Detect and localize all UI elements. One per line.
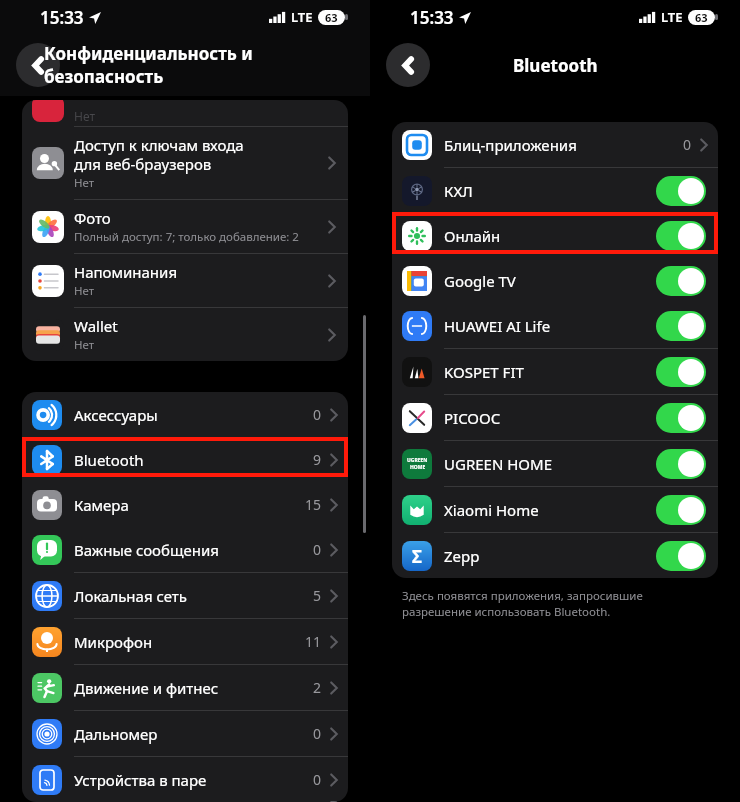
button[interactable]: Переключатель включён [656,449,706,479]
staticText: Микрофон [74,632,305,652]
staticText: HOME [410,464,426,471]
staticText: Нет [74,175,95,191]
staticText: Дальномер [74,724,313,744]
staticText: Важные сообщения [74,540,313,560]
staticText: 0 [313,405,322,424]
button[interactable]: UGREEN [392,441,718,486]
button[interactable]: Переключатель включён [656,403,706,433]
staticText: Аксессуары [74,405,313,425]
staticText: 5 [313,586,322,605]
staticText: LTE [291,8,313,26]
staticText: 15:33 [40,6,84,29]
button[interactable]: Аксессуары [22,392,348,437]
staticText: Доступ к ключам входа для веб-браузеров [74,135,244,174]
button[interactable]: Переключатель включён [656,266,706,296]
button[interactable]: Переключатель включён [656,541,706,571]
button[interactable]: Переключатель включён [656,221,706,251]
staticText: Xiaomi Home [444,500,656,520]
button[interactable]: Доступ к ключам входа для веб-браузеров [22,127,348,199]
button[interactable]: Google TV [392,258,718,303]
staticText: Здесь появятся приложения, запросившие р… [402,588,643,619]
button[interactable]: Напоминания [22,254,348,307]
button[interactable]: Переключатель включён [656,176,706,206]
staticText: Онлайн [444,226,656,246]
staticText: Нет [74,108,95,124]
button[interactable]: Переключатель включён [656,357,706,387]
staticText: 11 [305,632,322,651]
staticText: UGREEN HOME [444,454,656,474]
staticText: Движение и фитнес [74,678,313,698]
button[interactable]: Назад [386,43,430,87]
button[interactable]: Фото [22,200,348,253]
button[interactable]: Онлайн [392,213,718,258]
staticText: 0 [313,770,322,789]
button[interactable]: Устройства в паре [22,757,348,802]
staticText: Локальная сеть [74,586,313,606]
button[interactable]: Переключатель включён [656,495,706,525]
staticText: Bluetooth [74,450,313,470]
button[interactable]: Важные сообщения [22,527,348,572]
staticText: Устройства в паре [74,770,313,790]
staticText: 15 [305,495,322,514]
button[interactable]: Σ [392,533,718,578]
staticText: HUAWEI AI Life [444,316,656,336]
staticText: Нет [74,283,95,299]
staticText: 0 [313,540,322,559]
staticText: 9 [313,450,322,469]
staticText: LTE [661,8,683,26]
staticText: Zepp [444,546,656,566]
button[interactable]: Блиц-приложения [392,122,718,167]
staticText: Google TV [444,271,656,291]
staticText: 63 [695,10,708,25]
button[interactable]: Назад [16,43,60,87]
button[interactable]: КХЛ [392,168,718,213]
button[interactable]: Xiaomi Home [392,487,718,532]
staticText: 0 [683,135,692,154]
staticText: UGREEN [407,457,428,464]
button[interactable]: Микрофон [22,619,348,664]
button[interactable]: Локальная сеть [22,573,348,618]
staticText: KOSPET FIT [444,362,656,382]
staticText: 0 [313,724,322,743]
staticText: 63 [325,10,338,25]
button[interactable]: Bluetooth [22,437,348,482]
staticText: 15:33 [410,6,454,29]
staticText: Камера [74,495,305,515]
staticText: КХЛ [444,181,656,201]
staticText: Конфиденциальность и безопасность [44,42,364,88]
button[interactable]: Дальномер [22,711,348,756]
button[interactable]: Движение и фитнес [22,665,348,710]
staticText: 2 [313,678,322,697]
staticText: Полный доступ: 7; только добавление: 2 [74,229,299,245]
staticText: Wallet [74,316,118,336]
staticText: Фото [74,208,111,228]
button[interactable]: Wallet [22,308,348,361]
staticText: Нет [74,337,95,353]
staticText: Блиц-приложения [444,135,683,155]
staticText: PICOOC [444,408,656,428]
staticText: Напоминания [74,262,178,282]
button[interactable]: Переключатель включён [656,311,706,341]
button[interactable]: PICOOC [392,395,718,440]
staticText: Σ [412,545,422,568]
button[interactable]: KOSPET FIT [392,349,718,394]
button[interactable]: Камера [22,482,348,527]
button[interactable]: HUAWEI AI Life [392,303,718,348]
staticText: Bluetooth [513,54,598,77]
